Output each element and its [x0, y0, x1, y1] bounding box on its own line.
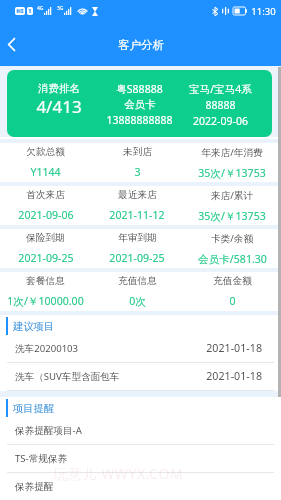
staticText: 4G [37, 5, 44, 12]
staticText: 13888888888 [106, 113, 173, 127]
staticText: 0 [229, 294, 236, 308]
button[interactable]: 洗车20200103 [0, 335, 281, 363]
staticText: 首次来店 [26, 189, 65, 201]
staticText: 2021-11-12 [109, 208, 165, 222]
staticText: 玩意儿·WWYX.COM [53, 464, 184, 483]
staticText: 2021-01-18 [206, 369, 262, 384]
staticText: 年来店/年消费 [201, 146, 263, 159]
button[interactable]: 保养提醒 [0, 473, 281, 500]
staticText: 建议项目 [13, 320, 55, 333]
button[interactable]: Back [0, 22, 22, 66]
staticText: 粤S88888 [116, 82, 163, 96]
staticText: 2021-09-06 [18, 208, 74, 222]
staticText: 消费排名 [38, 82, 80, 95]
staticText: 充值信息 [118, 275, 157, 287]
staticText: 套餐信息 [26, 275, 65, 287]
staticText: 洗车20200103 [15, 342, 79, 355]
staticText: 年审到期 [118, 232, 157, 244]
button[interactable]: 消费排名 [7, 70, 272, 137]
staticText: 保养提醒 [15, 481, 54, 493]
staticText: TS-常规保养 [15, 452, 68, 465]
staticText: 会员卡 [124, 98, 156, 111]
staticText: 充值金额 [213, 275, 252, 287]
staticText: 4/413 [36, 95, 82, 118]
staticText: 客户分析 [118, 38, 164, 52]
staticText: 2021-09-25 [109, 251, 165, 265]
staticText: 来店/累计 [211, 189, 253, 202]
staticText: 2022-09-06 [193, 114, 248, 128]
staticText: 未到店 [123, 146, 152, 158]
staticText: 会员卡/581.30 [198, 252, 267, 266]
staticText: 3 [134, 165, 141, 179]
staticText: 1次/￥10000.00 [7, 294, 84, 308]
staticText: 最近来店 [118, 189, 157, 201]
staticText: 欠款总额 [26, 146, 65, 158]
staticText: 卡类/余额 [211, 232, 253, 245]
staticText: 2021-01-18 [206, 341, 262, 356]
staticText: 0次 [129, 294, 146, 308]
staticText: 2021-09-25 [18, 251, 74, 265]
button[interactable]: TS-常规保养 [0, 445, 281, 473]
staticText: 88888 [205, 98, 236, 112]
button[interactable]: 洗车（SUV车型含面包车 [0, 363, 281, 391]
staticText: 35次/￥13753 [198, 209, 266, 223]
staticText: 保养提醒项目-A [15, 424, 82, 437]
staticText: 保险到期 [26, 232, 65, 244]
staticText: 宝马/宝马4系 [189, 82, 252, 96]
staticText: Y1144 [30, 165, 61, 179]
staticText: 洗车（SUV车型含面包车 [15, 370, 120, 383]
staticText: 项目提醒 [13, 402, 55, 415]
button[interactable]: 保养提醒项目-A [0, 417, 281, 445]
staticText: 11:30 [251, 5, 276, 18]
staticText: 3G [57, 5, 64, 12]
staticText: 35次/￥13753 [198, 166, 266, 180]
